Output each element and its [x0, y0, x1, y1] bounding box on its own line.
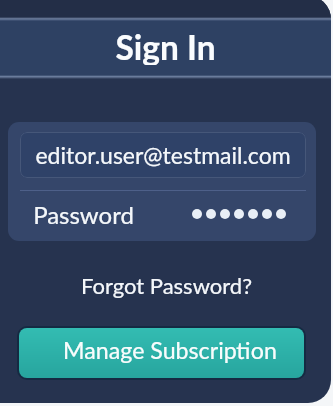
staticText: editor.user@testmail.com: [35, 141, 291, 169]
staticText: Manage Subscription: [63, 336, 277, 364]
staticText: Sign In: [115, 27, 216, 65]
button[interactable]: Password: [8, 189, 316, 239]
staticText: Forgot Password?: [81, 272, 252, 298]
button[interactable]: Forgot Password?: [69, 265, 264, 305]
button[interactable]: editor.user@testmail.com: [20, 132, 306, 178]
staticText: Password: [33, 200, 134, 229]
button[interactable]: Manage Subscription: [19, 328, 304, 378]
